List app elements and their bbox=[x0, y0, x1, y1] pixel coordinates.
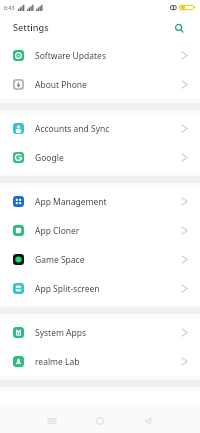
staticText: App Management bbox=[35, 196, 107, 208]
button[interactable]: Accounts and Sync bbox=[0, 114, 200, 143]
button[interactable]: Software Updates bbox=[0, 41, 200, 70]
staticText: Google bbox=[35, 152, 64, 164]
button[interactable]: Home bbox=[88, 409, 111, 432]
staticText: 6:43 bbox=[4, 4, 15, 11]
staticText: About Phone bbox=[35, 79, 87, 91]
button[interactable]: System Apps bbox=[0, 318, 200, 347]
button[interactable]: realme Lab bbox=[0, 347, 200, 376]
button[interactable]: Back bbox=[136, 409, 159, 432]
button[interactable]: About Phone bbox=[0, 70, 200, 99]
button[interactable]: App Management bbox=[0, 187, 200, 216]
button[interactable]: App Cloner bbox=[0, 216, 200, 245]
staticText: Accounts and Sync bbox=[35, 123, 110, 135]
staticText: Game Space bbox=[35, 254, 85, 266]
staticText: Settings bbox=[13, 21, 49, 34]
staticText: System Apps bbox=[35, 327, 87, 339]
staticText: App Cloner bbox=[35, 225, 80, 237]
staticText: Software Updates bbox=[35, 50, 106, 62]
button[interactable]: Search bbox=[169, 18, 189, 38]
staticText: realme Lab bbox=[35, 356, 80, 368]
button[interactable]: App Split-screen bbox=[0, 274, 200, 303]
button[interactable]: Recent apps bbox=[40, 409, 63, 432]
button[interactable]: Game Space bbox=[0, 245, 200, 274]
button[interactable]: Google bbox=[0, 143, 200, 172]
staticText: App Split-screen bbox=[35, 283, 100, 295]
